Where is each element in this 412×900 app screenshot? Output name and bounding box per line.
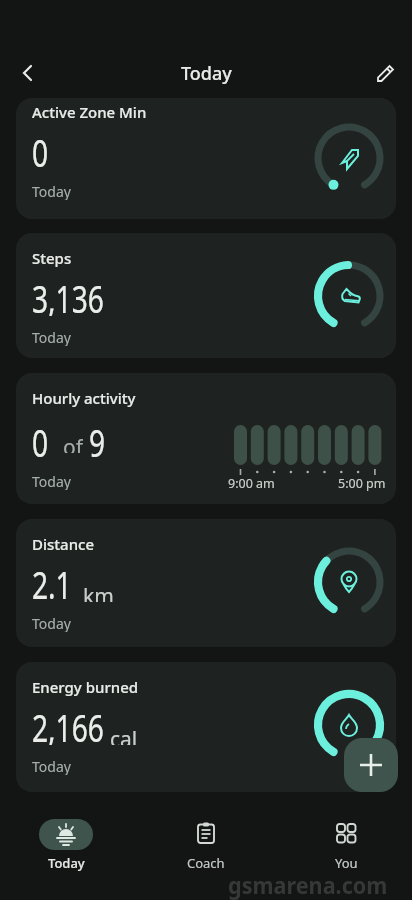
staticText: 9 — [89, 416, 105, 460]
button[interactable]: Distance — [16, 519, 396, 647]
staticText: 0 — [32, 126, 48, 170]
staticText: Today — [48, 854, 85, 872]
staticText: 5:00 pm — [338, 475, 386, 491]
button[interactable]: Today — [26, 810, 106, 872]
staticText: Coach — [187, 854, 225, 872]
staticText: Today — [32, 328, 71, 346]
button[interactable]: Active Zone Min — [16, 98, 396, 219]
staticText: Steps — [32, 248, 72, 268]
staticText: Hourly activity — [32, 388, 136, 408]
button[interactable]: Hourly activity — [16, 373, 396, 504]
button[interactable]: Coach — [166, 810, 246, 872]
staticText: 2,166 — [32, 701, 104, 745]
button[interactable]: Steps — [16, 233, 396, 358]
staticText: 9:00 am — [228, 475, 275, 491]
button[interactable]: You — [306, 810, 386, 872]
staticText: Today — [32, 472, 71, 490]
staticText: cal — [110, 725, 138, 745]
staticText: Active Zone Min — [32, 102, 147, 122]
staticText: of — [63, 433, 83, 453]
button[interactable] — [344, 738, 398, 792]
staticText: Today — [181, 61, 232, 86]
staticText: 3,136 — [32, 272, 104, 316]
staticText: Distance — [32, 534, 95, 554]
staticText: You — [335, 854, 358, 872]
staticText: Energy burned — [32, 677, 139, 697]
button[interactable] — [8, 54, 46, 92]
staticText: 2.1 — [32, 558, 72, 602]
button[interactable]: Energy burned — [16, 662, 396, 792]
staticText: km — [83, 582, 114, 602]
staticText: Today — [32, 757, 71, 775]
staticText: Today — [32, 182, 71, 200]
staticText: 0 — [32, 416, 48, 460]
staticText: Today — [32, 614, 71, 632]
staticText: gsmarena.com — [228, 868, 388, 900]
button[interactable] — [367, 54, 405, 92]
